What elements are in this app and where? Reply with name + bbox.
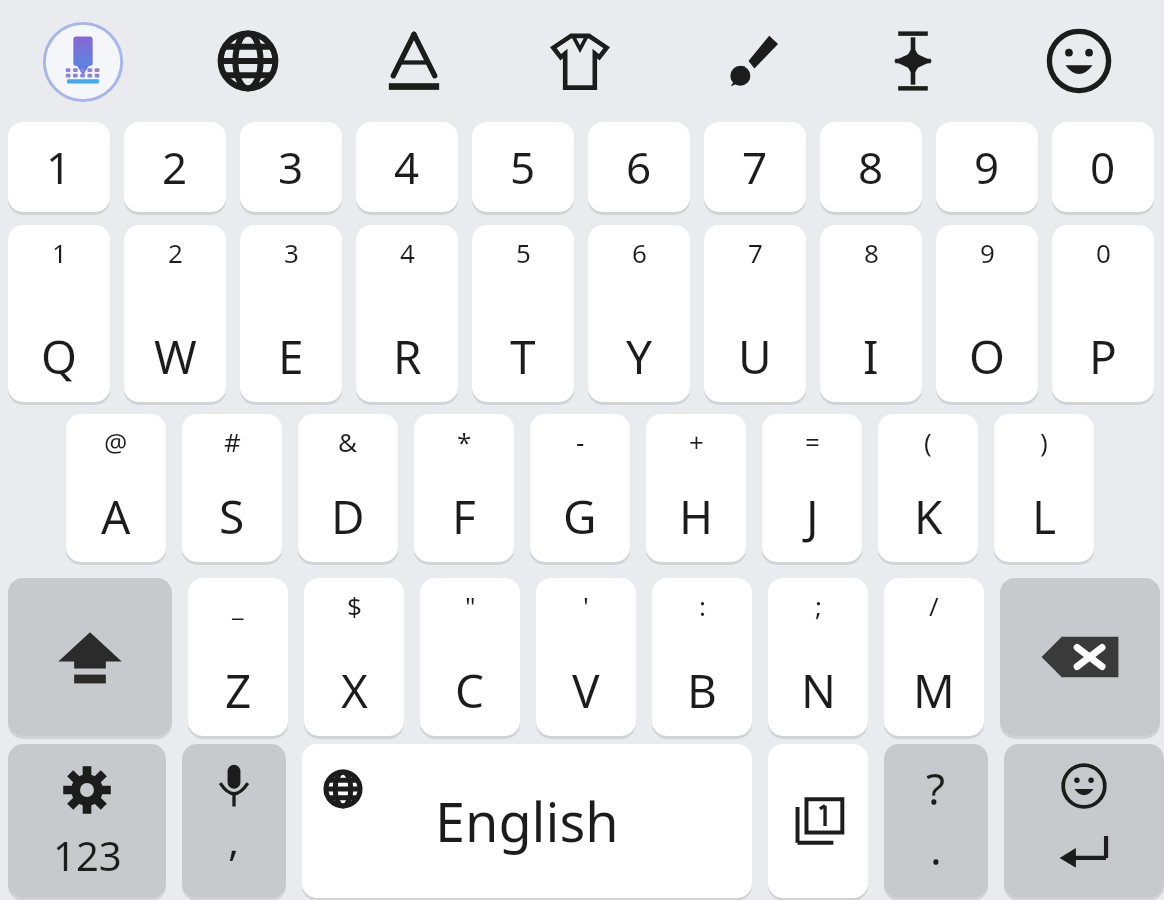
staticText: / (929, 588, 939, 623)
staticText: 7 (748, 235, 763, 270)
staticText: U (738, 325, 772, 388)
button[interactable]: O (936, 225, 1038, 402)
button[interactable]: Question mark, period (884, 744, 988, 898)
staticText: L (1032, 485, 1057, 548)
staticText: 6 (632, 235, 647, 270)
staticText: @ (104, 424, 128, 459)
button[interactable]: Shift (8, 578, 172, 736)
staticText: & (338, 424, 358, 459)
staticText: 0 (1090, 137, 1116, 197)
staticText: V (572, 659, 600, 722)
button[interactable]: N (768, 578, 868, 736)
staticText: J (806, 485, 819, 548)
staticText: S (219, 485, 245, 548)
staticText: ) (1040, 424, 1048, 459)
staticText: 8 (864, 235, 879, 270)
staticText: " (465, 588, 476, 623)
staticText: 1 (52, 235, 67, 270)
button[interactable]: F (414, 414, 514, 562)
staticText: W (154, 325, 197, 388)
staticText: N (801, 659, 836, 722)
button[interactable]: 3 (240, 122, 342, 212)
button[interactable]: Language (211, 24, 285, 98)
staticText: D (331, 485, 365, 548)
staticText: * (457, 424, 472, 459)
button[interactable]: S (182, 414, 282, 562)
staticText: P (1089, 325, 1117, 388)
button[interactable]: Emoji, enter (1004, 744, 1164, 898)
staticText: 4 (394, 137, 420, 197)
button[interactable]: A (66, 414, 166, 562)
button[interactable]: L (994, 414, 1094, 562)
button[interactable]: Q (8, 225, 110, 402)
button[interactable]: I (820, 225, 922, 402)
button[interactable]: D (298, 414, 398, 562)
button[interactable]: 6 (588, 122, 690, 212)
button[interactable]: 1 (8, 122, 110, 212)
button[interactable]: M (884, 578, 984, 736)
button[interactable]: 5 (472, 122, 574, 212)
staticText: E (278, 325, 304, 388)
button[interactable]: H (646, 414, 746, 562)
button[interactable]: Space, English (302, 744, 752, 898)
button[interactable]: R (356, 225, 458, 402)
button[interactable]: Voice input, comma (182, 744, 286, 898)
staticText: 4 (400, 235, 415, 270)
staticText: 3 (284, 235, 299, 270)
staticText: 0 (1096, 235, 1111, 270)
staticText: : (699, 588, 706, 623)
button[interactable]: G (530, 414, 630, 562)
button[interactable]: E (240, 225, 342, 402)
button[interactable]: Switch layout (768, 744, 868, 898)
staticText: R (393, 325, 422, 388)
button[interactable]: T (472, 225, 574, 402)
button[interactable]: 4 (356, 122, 458, 212)
button[interactable]: V (536, 578, 636, 736)
button[interactable]: 2 (124, 122, 226, 212)
button[interactable]: B (652, 578, 752, 736)
button[interactable]: Brush (710, 24, 784, 98)
button[interactable]: J (762, 414, 862, 562)
staticText: 123 (53, 828, 122, 882)
button[interactable]: K (878, 414, 978, 562)
staticText: Y (626, 325, 653, 388)
button[interactable]: C (420, 578, 520, 736)
staticText: 5 (510, 137, 536, 197)
button[interactable]: 8 (820, 122, 922, 212)
staticText: $ (347, 588, 362, 623)
button[interactable]: Keyboard app (41, 20, 125, 104)
staticText: I (863, 325, 879, 388)
button[interactable]: 0 (1052, 122, 1154, 212)
staticText: Z (225, 659, 252, 722)
staticText: H (679, 485, 714, 548)
staticText: B (687, 659, 717, 722)
staticText: X (341, 659, 368, 722)
staticText: ( (924, 424, 932, 459)
button[interactable]: Emoji (1042, 24, 1116, 98)
button[interactable]: 9 (936, 122, 1038, 212)
button[interactable]: Settings, numbers (8, 744, 166, 898)
staticText: 9 (974, 137, 1000, 197)
button[interactable]: X (304, 578, 404, 736)
staticText: . (930, 818, 942, 868)
button[interactable]: W (124, 225, 226, 402)
staticText: M (913, 659, 955, 722)
staticText: ? (926, 758, 946, 818)
button[interactable]: U (704, 225, 806, 402)
staticText: O (969, 325, 1005, 388)
button[interactable]: Theme (543, 24, 617, 98)
button[interactable]: Resize keyboard (876, 24, 950, 98)
staticText: T (510, 325, 536, 388)
button[interactable]: Backspace (1000, 578, 1160, 736)
staticText: English (435, 784, 619, 858)
button[interactable]: P (1052, 225, 1154, 402)
staticText: ' (583, 588, 589, 623)
staticText: 6 (626, 137, 652, 197)
staticText: 3 (278, 137, 304, 197)
button[interactable]: Y (588, 225, 690, 402)
button[interactable]: 7 (704, 122, 806, 212)
staticText: 9 (980, 235, 995, 270)
button[interactable]: Font style (377, 24, 451, 98)
button[interactable]: Z (188, 578, 288, 736)
staticText: = (805, 424, 820, 459)
